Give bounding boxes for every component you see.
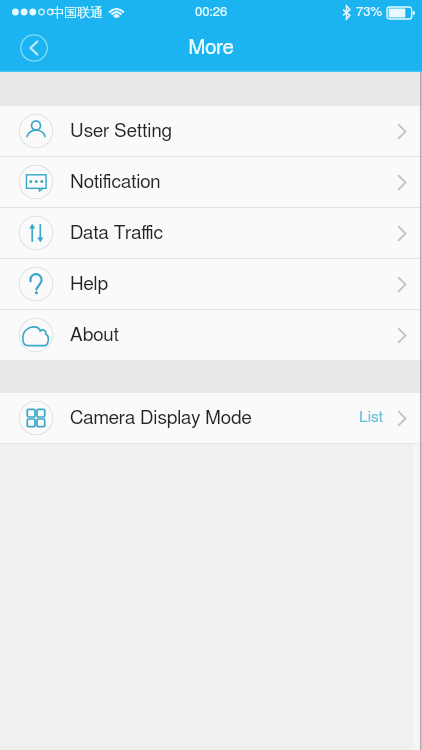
- staticText: Data Traffic: [70, 224, 164, 243]
- staticText: Notification: [70, 173, 161, 192]
- staticText: Help: [70, 275, 109, 294]
- button[interactable]: Data Traffic: [0, 208, 422, 258]
- staticText: More: [188, 38, 234, 58]
- staticText: Camera Display Mode: [70, 409, 252, 428]
- staticText: 73%: [356, 6, 383, 19]
- button[interactable]: Notification: [0, 157, 422, 207]
- staticText: About: [70, 326, 119, 345]
- button[interactable]: User Setting: [0, 106, 422, 156]
- button[interactable]: About: [0, 310, 422, 360]
- staticText: 00:26: [195, 6, 228, 19]
- button[interactable]: Help: [0, 259, 422, 309]
- staticText: User Setting: [70, 122, 172, 141]
- button[interactable]: Back: [16, 30, 52, 66]
- staticText: 中国联通: [51, 4, 103, 20]
- staticText: List: [359, 410, 383, 426]
- button[interactable]: Camera Display Mode: [0, 393, 422, 443]
